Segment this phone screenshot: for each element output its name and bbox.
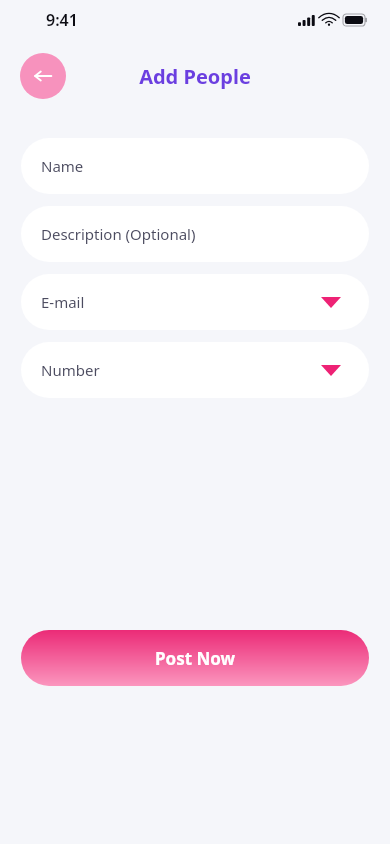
staticText: Name	[41, 156, 84, 176]
staticText: Add People	[139, 63, 251, 90]
button[interactable]: Number	[21, 342, 369, 398]
button[interactable]: Back	[20, 53, 66, 99]
button[interactable]: Description (Optional)	[21, 206, 369, 262]
button[interactable]: Name	[21, 138, 369, 194]
button[interactable]: E-mail	[21, 274, 369, 330]
staticText: E-mail	[41, 292, 85, 312]
staticText: Number	[41, 360, 100, 380]
staticText: Description (Optional)	[41, 224, 196, 244]
staticText: 9:41	[46, 9, 78, 31]
staticText: Post Now	[155, 647, 236, 670]
button[interactable]: Post Now	[21, 630, 369, 686]
